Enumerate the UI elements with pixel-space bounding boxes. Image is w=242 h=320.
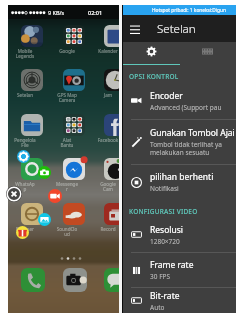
button[interactable]: Gallery: [38, 213, 51, 226]
staticText: Google: [56, 48, 78, 54]
staticText: Tombol tidak terlihat ya melakukan sesua…: [150, 140, 223, 157]
button[interactable]: Mobile Legends: [21, 25, 43, 61]
button[interactable]: Record: [48, 189, 62, 203]
button[interactable]: Encoder: [123, 82, 236, 119]
button[interactable]: Gunakan Tombol Ajai: [123, 120, 236, 164]
staticText: Google Cam: [97, 181, 119, 193]
button[interactable]: Settings tab: [123, 42, 179, 65]
staticText: Advanced (Support pau: [150, 103, 222, 112]
staticText: Setelan: [14, 92, 36, 98]
button[interactable]: GPS Map Camera: [63, 69, 85, 105]
button[interactable]: SoundCloud: [63, 203, 85, 239]
staticText: OPSI KONTROL: [129, 72, 179, 81]
button[interactable]: Browser: [21, 203, 43, 239]
staticText: SoundCloud: [56, 226, 78, 238]
button[interactable]: Screenshot: [38, 166, 51, 179]
staticText: Alat Bantu: [56, 137, 78, 149]
button[interactable]: Bit-rate: [123, 288, 236, 313]
button[interactable]: Settings: [17, 150, 30, 163]
staticText: 1280×720: [150, 237, 180, 246]
button[interactable]: Video tab: [179, 42, 236, 65]
staticText: Encoder: [150, 90, 183, 102]
button[interactable]: Home: [16, 226, 29, 239]
staticText: Mobile Legends: [14, 48, 36, 60]
staticText: Gunakan Tombol Ajai: [150, 127, 235, 139]
staticText: WhatsApp: [14, 181, 36, 193]
button[interactable]: WhatsApp: [21, 158, 43, 194]
staticText: 9 KB/s: [48, 9, 65, 16]
staticText: Record: [97, 226, 119, 232]
staticText: 30 FPS: [150, 272, 171, 281]
button[interactable]: Telepon: [21, 268, 45, 292]
button[interactable]: Messenger: [63, 158, 85, 194]
staticText: Hotspot pribadi: 1 koneksi:Digun: [152, 7, 226, 14]
staticText: Kalender: [97, 48, 119, 54]
staticText: GPS Map Camera: [56, 92, 78, 104]
staticText: 02:01: [88, 9, 103, 16]
staticText: Messenger: [56, 181, 78, 193]
button[interactable]: Frame rate: [123, 253, 236, 287]
staticText: Browser: [14, 226, 36, 232]
button[interactable]: Record: [104, 203, 126, 239]
staticText: Auto: [150, 303, 165, 312]
button[interactable]: Google Cam: [104, 158, 126, 194]
button[interactable]: Pesan: [104, 268, 128, 292]
staticText: Jam: [97, 92, 119, 98]
button[interactable]: Facebook: [104, 114, 126, 150]
button[interactable]: Menu: [127, 21, 143, 37]
staticText: Frame rate: [150, 259, 194, 271]
button[interactable]: Close: [6, 186, 22, 202]
button[interactable]: Setelan: [21, 69, 43, 105]
button[interactable]: Alat Bantu: [63, 114, 85, 150]
staticText: Pengelola File: [14, 137, 36, 149]
staticText: Resolusi: [150, 224, 184, 236]
button[interactable]: Google: [63, 25, 85, 61]
staticText: Notifikasi: [150, 184, 179, 193]
staticText: Facebook: [97, 137, 119, 143]
button[interactable]: pilihan berhenti: [123, 165, 236, 199]
staticText: Setelan: [157, 21, 196, 37]
staticText: Bit-rate: [150, 290, 180, 302]
button[interactable]: Jam: [104, 69, 126, 105]
button[interactable]: Pengelola File: [21, 114, 43, 150]
staticText: KONFIGURASI VIDEO: [129, 207, 198, 216]
button[interactable]: Kamera: [63, 268, 87, 292]
button[interactable]: Resolusi: [123, 217, 236, 252]
button[interactable]: Kalender: [104, 25, 126, 61]
staticText: pilihan berhenti: [150, 171, 214, 183]
